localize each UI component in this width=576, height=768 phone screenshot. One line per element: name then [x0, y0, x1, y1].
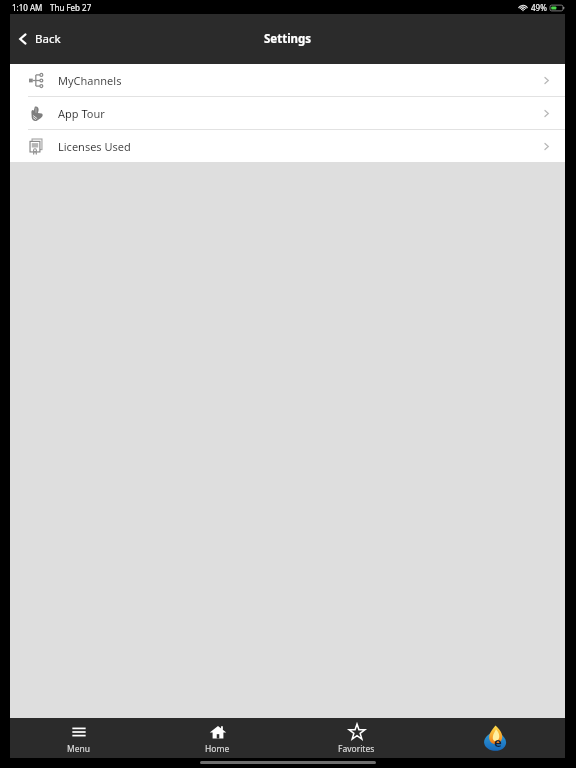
staticText: App Tour [58, 106, 105, 121]
button[interactable]: Back [10, 17, 73, 61]
staticText: Favorites [338, 743, 375, 755]
button[interactable]: Favorites [287, 718, 426, 758]
button[interactable]: MyChannels [10, 64, 565, 96]
staticText: Menu [67, 743, 91, 755]
staticText: 1:10 AM [12, 2, 43, 13]
staticText: Back [35, 31, 61, 47]
button[interactable]: Licenses Used [10, 130, 565, 162]
button[interactable]: Menu [10, 718, 148, 758]
staticText: 49% [531, 2, 547, 13]
button[interactable]: App Tour [10, 97, 565, 129]
button[interactable]: App logo [426, 718, 565, 758]
staticText: Licenses Used [58, 139, 131, 154]
staticText: MyChannels [58, 73, 122, 88]
staticText: e [494, 733, 502, 751]
staticText: Home [205, 743, 230, 755]
button[interactable]: Home [148, 718, 287, 758]
staticText: Thu Feb 27 [50, 2, 92, 13]
staticText: Settings [264, 31, 312, 47]
